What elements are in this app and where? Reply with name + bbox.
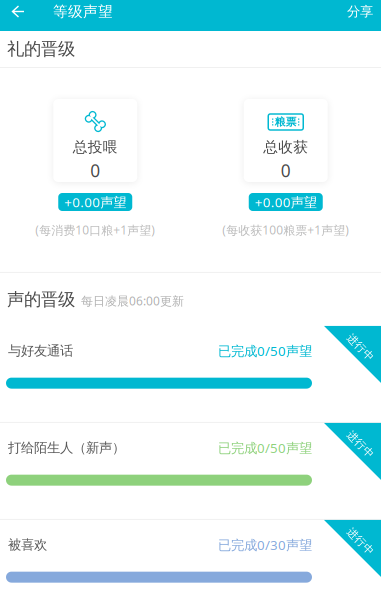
staticText: 声的晋级 bbox=[7, 289, 75, 310]
staticText: 被喜欢 bbox=[8, 537, 47, 553]
button[interactable]: 打给陌生人（新声） bbox=[0, 423, 381, 519]
staticText: 已完成0/30声望 bbox=[218, 536, 312, 554]
staticText: 已完成0/50声望 bbox=[218, 439, 312, 457]
staticText: 进行中 bbox=[344, 341, 377, 354]
staticText: (每消费10口粮+1声望) bbox=[35, 222, 155, 238]
staticText: +0.00声望 bbox=[64, 193, 126, 211]
staticText: 0 bbox=[281, 159, 291, 182]
staticText: 进行中 bbox=[344, 535, 377, 548]
staticText: 粮票 bbox=[275, 115, 297, 128]
staticText: 总收获 bbox=[263, 138, 308, 156]
button[interactable]: 与好友通话 bbox=[0, 326, 381, 422]
staticText: 0 bbox=[90, 159, 100, 182]
staticText: 分享 bbox=[347, 3, 373, 20]
staticText: 已完成0/50声望 bbox=[218, 342, 312, 360]
staticText: 礼的晋级 bbox=[7, 38, 75, 60]
staticText: 打给陌生人（新声） bbox=[8, 440, 125, 456]
staticText: 与好友通话 bbox=[8, 343, 73, 359]
staticText: 进行中 bbox=[344, 438, 377, 451]
button[interactable]: 被喜欢 bbox=[0, 520, 381, 609]
staticText: (每收获100粮票+1声望) bbox=[222, 222, 349, 238]
staticText: 等级声望 bbox=[53, 2, 113, 20]
staticText: +0.00声望 bbox=[255, 193, 317, 211]
staticText: 总投喂 bbox=[73, 138, 118, 156]
button[interactable]: Back bbox=[0, 1, 53, 22]
staticText: 每日凌晨06:00更新 bbox=[81, 293, 184, 309]
button[interactable]: 分享 bbox=[337, 1, 381, 22]
